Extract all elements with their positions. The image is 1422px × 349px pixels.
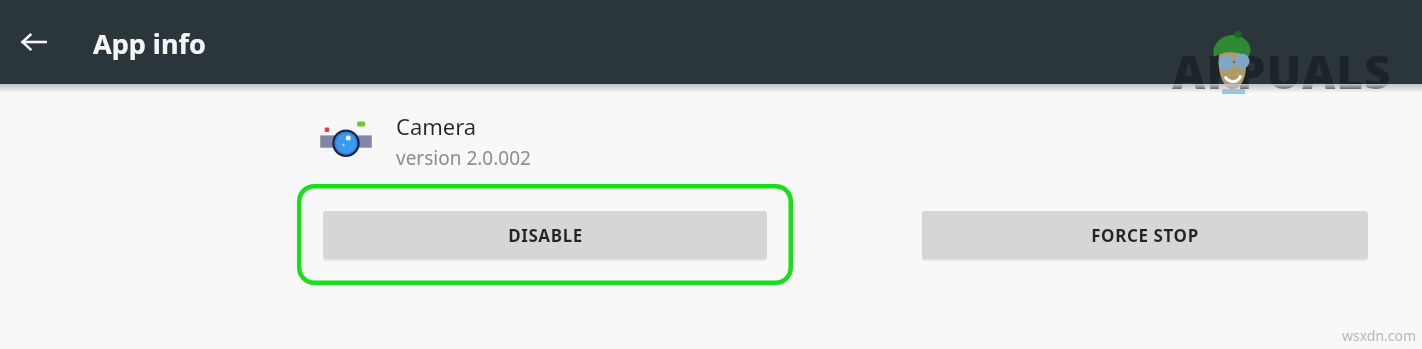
staticText: App info	[93, 25, 206, 62]
staticText: Camera	[396, 111, 477, 141]
staticText: APPUALS	[1172, 40, 1392, 103]
staticText: DISABLE	[508, 224, 583, 247]
button[interactable]: DISABLE	[323, 211, 767, 259]
staticText: wsxdn.com	[1342, 326, 1417, 345]
button[interactable]: Back	[10, 18, 58, 66]
staticText: FORCE STOP	[1091, 224, 1199, 247]
staticText: version 2.0.002	[396, 145, 531, 171]
button[interactable]: FORCE STOP	[922, 211, 1368, 259]
